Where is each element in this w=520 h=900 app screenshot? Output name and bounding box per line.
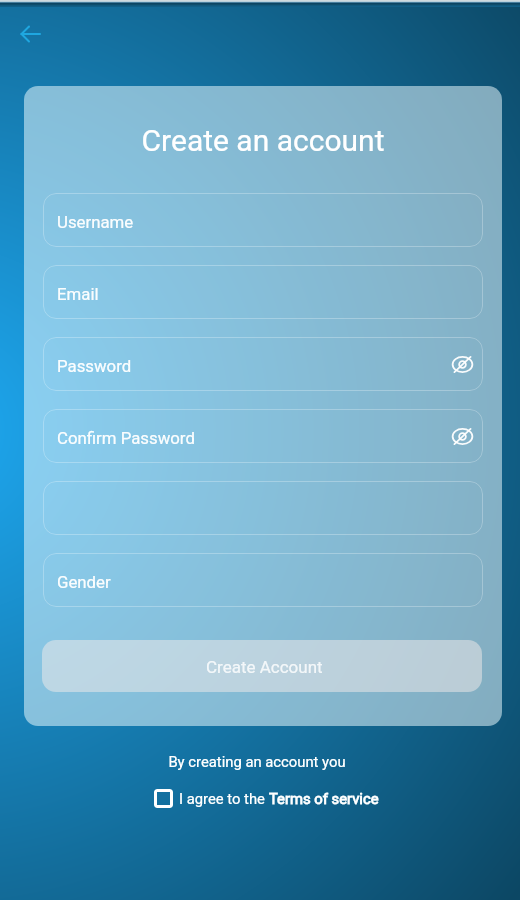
button[interactable]: Toggle password visibility bbox=[447, 421, 477, 451]
button[interactable]: Confirm Password bbox=[43, 409, 483, 463]
staticText: Username bbox=[57, 212, 134, 232]
button[interactable]: Username bbox=[43, 193, 483, 247]
staticText: By creating an account you bbox=[0, 753, 517, 770]
button[interactable]: Agree to terms checkbox bbox=[154, 789, 173, 808]
button[interactable]: Toggle password visibility bbox=[447, 349, 477, 379]
staticText: Email bbox=[57, 284, 99, 304]
button[interactable]: Terms of service bbox=[269, 790, 379, 807]
button[interactable]: Gender bbox=[43, 553, 483, 607]
staticText: Create Account bbox=[206, 657, 323, 677]
staticText: I agree to the bbox=[179, 790, 269, 807]
button[interactable]: Email bbox=[43, 265, 483, 319]
staticText: Confirm Password bbox=[57, 428, 195, 448]
button[interactable]: Create Account bbox=[42, 640, 482, 692]
button[interactable] bbox=[43, 481, 483, 535]
button[interactable]: Password bbox=[43, 337, 483, 391]
staticText: Password bbox=[57, 356, 132, 376]
button[interactable]: Back bbox=[12, 15, 50, 53]
staticText: Gender bbox=[57, 572, 111, 592]
staticText: Create an account bbox=[24, 123, 502, 158]
